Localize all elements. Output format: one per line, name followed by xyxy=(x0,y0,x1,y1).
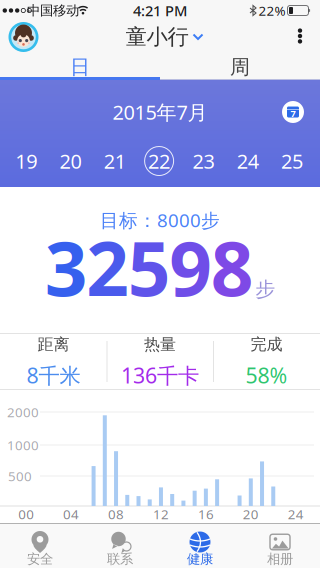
staticText: 热量 xyxy=(144,334,176,354)
button[interactable]: 20 xyxy=(48,143,92,179)
staticText: 相册 xyxy=(267,551,293,567)
button[interactable]: 相册 xyxy=(240,523,320,568)
staticText: 08 xyxy=(108,505,124,523)
button[interactable]: 联系 xyxy=(80,523,160,568)
staticText: 2015年7月 xyxy=(112,99,207,125)
button[interactable]: 周 xyxy=(160,55,320,79)
staticText: 23 xyxy=(192,148,214,174)
staticText: 步 xyxy=(255,277,275,302)
staticText: 7 xyxy=(290,107,295,120)
button[interactable]: 童小行 xyxy=(125,24,202,50)
button[interactable]: 23 xyxy=(181,143,225,179)
staticText: 19 xyxy=(15,148,37,174)
staticText: 童小行 xyxy=(125,24,188,50)
staticText: 8 xyxy=(211,217,254,317)
staticText: 20 xyxy=(243,505,259,523)
staticText: 2000 xyxy=(7,403,39,421)
staticText: 500 xyxy=(8,467,32,485)
staticText: 8千米 xyxy=(26,361,80,389)
staticText: 04 xyxy=(63,505,79,523)
button[interactable]: 日 xyxy=(0,55,160,79)
staticText: 中国移动 xyxy=(27,2,79,19)
staticText: 健康 xyxy=(187,551,213,567)
staticText: 20 xyxy=(59,148,81,174)
staticText: 安全 xyxy=(27,551,53,567)
button[interactable]: 21 xyxy=(93,143,137,179)
staticText: 12 xyxy=(153,505,169,523)
staticText: 1000 xyxy=(7,436,39,454)
staticText: 16 xyxy=(198,505,214,523)
staticText: 22 xyxy=(148,148,170,174)
staticText: 5 xyxy=(128,217,171,317)
button[interactable]: 健康 xyxy=(160,523,240,568)
staticText: 2 xyxy=(86,217,129,317)
staticText: 00 xyxy=(18,505,34,523)
staticText: 4:21 PM xyxy=(133,1,187,20)
staticText: 完成 xyxy=(250,334,282,354)
staticText: 58% xyxy=(245,361,287,389)
button[interactable]: 19 xyxy=(4,143,48,179)
staticText: 周 xyxy=(230,55,250,79)
staticText: 联系 xyxy=(107,551,133,567)
staticText: 136千卡 xyxy=(121,361,199,389)
staticText: 21 xyxy=(104,148,126,174)
staticText: 日 xyxy=(70,55,90,79)
staticText: 3 xyxy=(45,217,88,317)
button[interactable]: 更多 xyxy=(288,22,312,50)
staticText: 9 xyxy=(169,217,212,317)
button[interactable]: 安全 xyxy=(0,523,80,568)
staticText: 24 xyxy=(288,505,304,523)
button[interactable]: 24 xyxy=(226,143,270,179)
button[interactable]: 个人资料 xyxy=(8,22,38,52)
staticText: 25 xyxy=(281,148,303,174)
staticText: 目标：8000步 xyxy=(100,208,220,232)
button[interactable]: 选择日期 xyxy=(282,101,304,123)
button[interactable]: 22 xyxy=(137,143,181,179)
staticText: 距离 xyxy=(37,334,69,354)
staticText: 22% xyxy=(258,2,285,19)
button[interactable]: 25 xyxy=(270,143,314,179)
staticText: 24 xyxy=(237,148,259,174)
